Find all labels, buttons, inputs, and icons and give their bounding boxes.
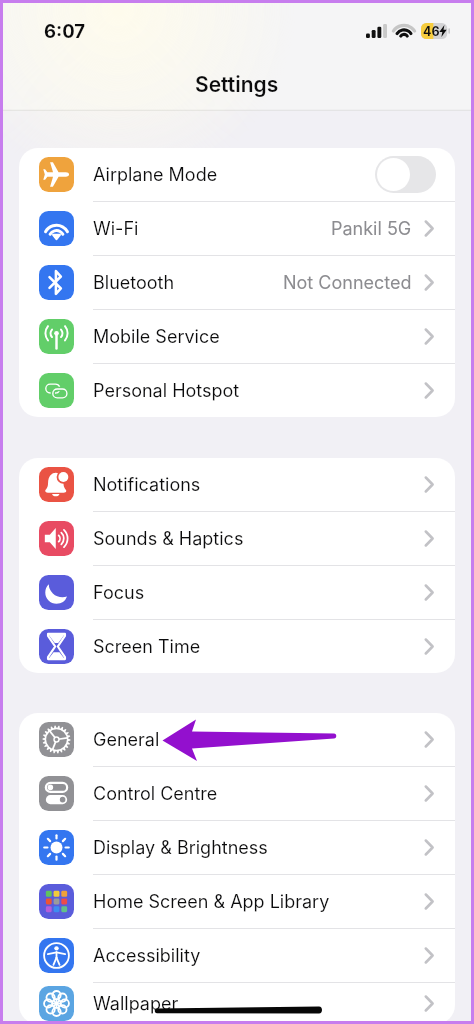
- button[interactable]: Wallpaper: [19, 983, 455, 1024]
- button[interactable]: Focus: [19, 566, 455, 619]
- button[interactable]: Airplane Mode toggle, off: [375, 156, 436, 193]
- staticText: Personal Hotspot: [93, 380, 240, 402]
- button[interactable]: Accessibility: [19, 929, 455, 982]
- staticText: Display & Brightness: [93, 837, 268, 859]
- staticText: Bluetooth: [93, 272, 175, 294]
- staticText: 6:07: [44, 20, 86, 42]
- button[interactable]: General: [19, 713, 455, 766]
- staticText: Airplane Mode: [93, 164, 218, 186]
- button[interactable]: Bluetooth: [19, 256, 455, 309]
- staticText: Notifications: [93, 474, 201, 496]
- staticText: Not Connected: [283, 272, 412, 294]
- button[interactable]: Display & Brightness: [19, 821, 455, 874]
- staticText: Accessibility: [93, 945, 201, 967]
- staticText: 46: [423, 24, 440, 39]
- staticText: Screen Time: [93, 636, 201, 658]
- button[interactable]: Personal Hotspot: [19, 364, 455, 417]
- staticText: Mobile Service: [93, 326, 220, 348]
- button[interactable]: Home Screen & App Library: [19, 875, 455, 928]
- staticText: General: [93, 729, 160, 751]
- button[interactable]: Control Centre: [19, 767, 455, 820]
- staticText: Settings: [195, 72, 279, 97]
- button[interactable]: Airplane Mode: [19, 148, 455, 201]
- staticText: Wi-Fi: [93, 218, 139, 240]
- staticText: Wallpaper: [93, 993, 179, 1015]
- staticText: Control Centre: [93, 783, 218, 805]
- staticText: Focus: [93, 582, 145, 604]
- staticText: Pankil 5G: [331, 218, 412, 240]
- button[interactable]: Screen Time: [19, 620, 455, 673]
- button[interactable]: Mobile Service: [19, 310, 455, 363]
- button[interactable]: Notifications: [19, 458, 455, 511]
- button[interactable]: Wi-Fi: [19, 202, 455, 255]
- staticText: Home Screen & App Library: [93, 891, 330, 913]
- button[interactable]: Sounds & Haptics: [19, 512, 455, 565]
- staticText: Sounds & Haptics: [93, 528, 244, 550]
